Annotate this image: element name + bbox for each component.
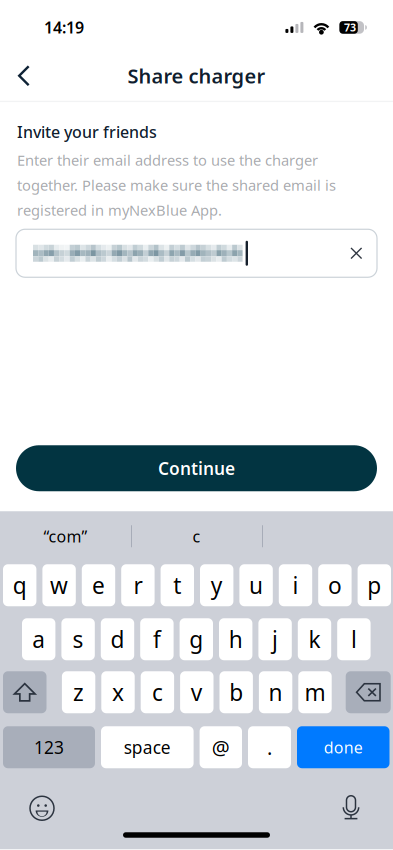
staticText: Enter their email address to use the cha… [17, 150, 318, 170]
staticText: x [112, 677, 124, 707]
button[interactable]: done [297, 726, 389, 768]
button[interactable]: z [62, 671, 95, 713]
button[interactable]: Shift [3, 671, 46, 713]
staticText: 14:19 [44, 17, 84, 38]
staticText: . [267, 734, 272, 761]
staticText: Invite your friends [17, 121, 157, 142]
button[interactable]: m [298, 671, 332, 713]
button[interactable]: . [248, 726, 291, 768]
button[interactable]: x [101, 671, 135, 713]
button[interactable]: l [337, 618, 371, 660]
button[interactable]: d [101, 618, 134, 660]
staticText: done [324, 737, 363, 758]
button[interactable]: v [180, 671, 213, 713]
button[interactable]: Continue [16, 445, 377, 491]
button[interactable]: h [219, 618, 252, 660]
button[interactable]: p [358, 564, 391, 606]
button[interactable]: t [161, 564, 194, 606]
button[interactable]: u [239, 564, 273, 606]
staticText: q [13, 570, 27, 600]
button[interactable]: g [180, 618, 213, 660]
staticText: f [153, 624, 161, 654]
staticText: h [229, 624, 243, 654]
button[interactable]: 123 [3, 726, 95, 768]
staticText: b [229, 677, 243, 707]
button[interactable]: Emoji keyboard [20, 786, 64, 830]
staticText: i [292, 570, 298, 600]
staticText: p [367, 570, 381, 600]
staticText: m [304, 677, 325, 707]
button[interactable]: w [42, 564, 76, 606]
button[interactable]: e [82, 564, 115, 606]
button[interactable]: n [259, 671, 292, 713]
staticText: registered in myNexBlue App. [17, 200, 222, 220]
staticText: z [73, 677, 84, 707]
staticText: c [192, 526, 200, 547]
staticText: w [50, 570, 68, 600]
staticText: j [272, 624, 278, 654]
staticText: space [124, 736, 171, 759]
staticText: g [189, 624, 203, 654]
button[interactable]: f [140, 618, 174, 660]
staticText: 73 [344, 20, 356, 34]
staticText: e [92, 570, 105, 600]
staticText: Continue [158, 457, 235, 480]
button[interactable]: i [279, 564, 312, 606]
button[interactable]: b [219, 671, 253, 713]
button[interactable]: Dictation [329, 786, 373, 830]
staticText: l [351, 624, 357, 654]
staticText: t [173, 570, 181, 600]
button[interactable]: j [258, 618, 292, 660]
staticText: @ [212, 734, 230, 761]
staticText: v [191, 677, 203, 707]
button[interactable]: y [200, 564, 233, 606]
button[interactable]: Clear text [336, 231, 377, 276]
staticText: Share charger [127, 62, 265, 89]
button[interactable]: space [101, 726, 194, 768]
button[interactable]: o [318, 564, 352, 606]
staticText: s [73, 624, 84, 654]
button[interactable]: Delete [346, 671, 391, 713]
staticText: u [249, 570, 263, 600]
staticText: 123 [34, 736, 64, 759]
button[interactable]: s [61, 618, 95, 660]
button[interactable]: @ [200, 726, 242, 768]
staticText: c [152, 677, 163, 707]
staticText: together. Please make sure the shared em… [17, 175, 336, 195]
button[interactable]: a [22, 618, 55, 660]
staticText: o [328, 570, 342, 600]
staticText: d [110, 624, 124, 654]
button[interactable]: “com” [0, 514, 131, 558]
staticText: n [269, 677, 283, 707]
button[interactable]: r [121, 564, 155, 606]
button[interactable]: q [3, 564, 36, 606]
button[interactable]: c [131, 514, 262, 558]
button[interactable]: c [141, 671, 174, 713]
staticText: a [32, 624, 45, 654]
staticText: “com” [43, 526, 87, 547]
button[interactable]: Back [2, 53, 45, 98]
button[interactable]: k [298, 618, 331, 660]
staticText: r [133, 570, 142, 600]
staticText: y [211, 570, 223, 600]
staticText: k [308, 624, 320, 654]
